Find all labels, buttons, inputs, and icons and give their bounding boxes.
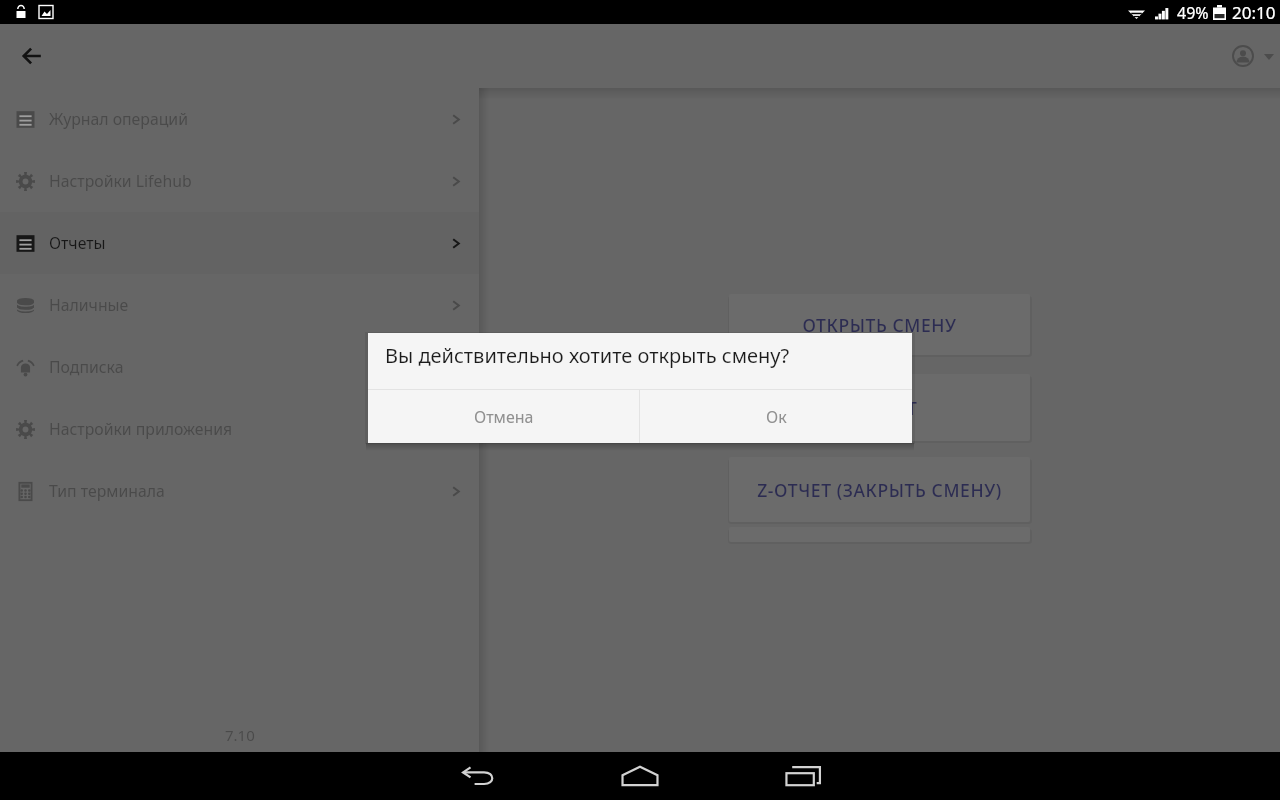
staticText: Тип терминала xyxy=(49,480,165,502)
staticText: Настройки Lifehub xyxy=(49,170,192,192)
staticText: 7.10 xyxy=(225,725,255,745)
button[interactable]: Account xyxy=(1232,45,1276,67)
button[interactable]: Наличные xyxy=(0,274,479,336)
button[interactable]: Navigate up xyxy=(10,34,54,78)
staticText: Наличные xyxy=(49,294,129,316)
staticText: 20:10 xyxy=(1232,1,1276,24)
staticText: Подписка xyxy=(49,356,124,378)
staticText: ОТКРЫТЬ СМЕНУ xyxy=(802,313,957,337)
button[interactable]: Тип терминала xyxy=(0,460,479,522)
button[interactable]: Back xyxy=(454,752,502,800)
staticText: Ок xyxy=(766,406,787,428)
button[interactable]: Home xyxy=(616,752,664,800)
staticText: 49% xyxy=(1177,2,1209,24)
button[interactable]: Отчеты xyxy=(0,212,479,274)
button[interactable]: Журнал операций xyxy=(0,88,479,150)
button[interactable]: Recent apps xyxy=(779,752,827,800)
button[interactable]: Отмена xyxy=(368,390,639,443)
button[interactable]: Z-ОТЧЕТ (ЗАКРЫТЬ СМЕНУ) xyxy=(729,457,1030,522)
button[interactable]: ОТКРЫТЬ СМЕНУ xyxy=(729,294,1030,355)
staticText: Журнал операций xyxy=(49,108,188,130)
staticText: Отмена xyxy=(474,406,534,428)
button[interactable]: X-ОТЧЕТ xyxy=(729,374,1030,441)
staticText: Отчеты xyxy=(49,232,106,254)
staticText: Z-ОТЧЕТ (ЗАКРЫТЬ СМЕНУ) xyxy=(757,478,1002,502)
button[interactable]: Подписка xyxy=(0,336,479,398)
button[interactable]: Настройки приложения xyxy=(0,398,479,460)
staticText: Настройки приложения xyxy=(49,418,233,440)
staticText: X-ОТЧЕТ xyxy=(842,396,918,420)
button[interactable]: Настройки Lifehub xyxy=(0,150,479,212)
staticText: Вы действительно хотите открыть смену? xyxy=(385,342,790,369)
button[interactable]: Ок xyxy=(640,390,912,443)
